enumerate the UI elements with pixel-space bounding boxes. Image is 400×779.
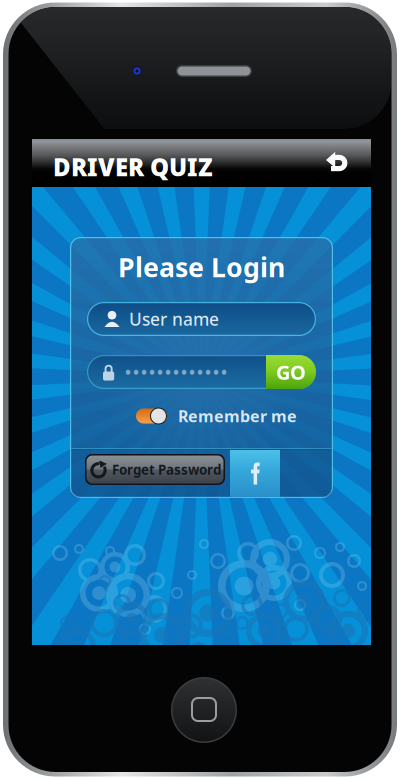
button[interactable]: Back [321, 147, 353, 179]
button[interactable]: Remember me [136, 406, 311, 426]
button[interactable]: Sign in with Facebook [230, 450, 280, 497]
staticText: Forget Password [112, 461, 221, 478]
staticText: DRIVER QUIZ [53, 151, 213, 183]
staticText: ••••••••••••• [124, 359, 228, 385]
staticText: GO [276, 359, 306, 385]
staticText: Remember me [178, 405, 297, 427]
button[interactable]: GO [266, 355, 316, 389]
staticText: User name [129, 307, 219, 330]
staticText: Please Login [118, 249, 285, 285]
button[interactable]: Forget Password [85, 454, 225, 485]
